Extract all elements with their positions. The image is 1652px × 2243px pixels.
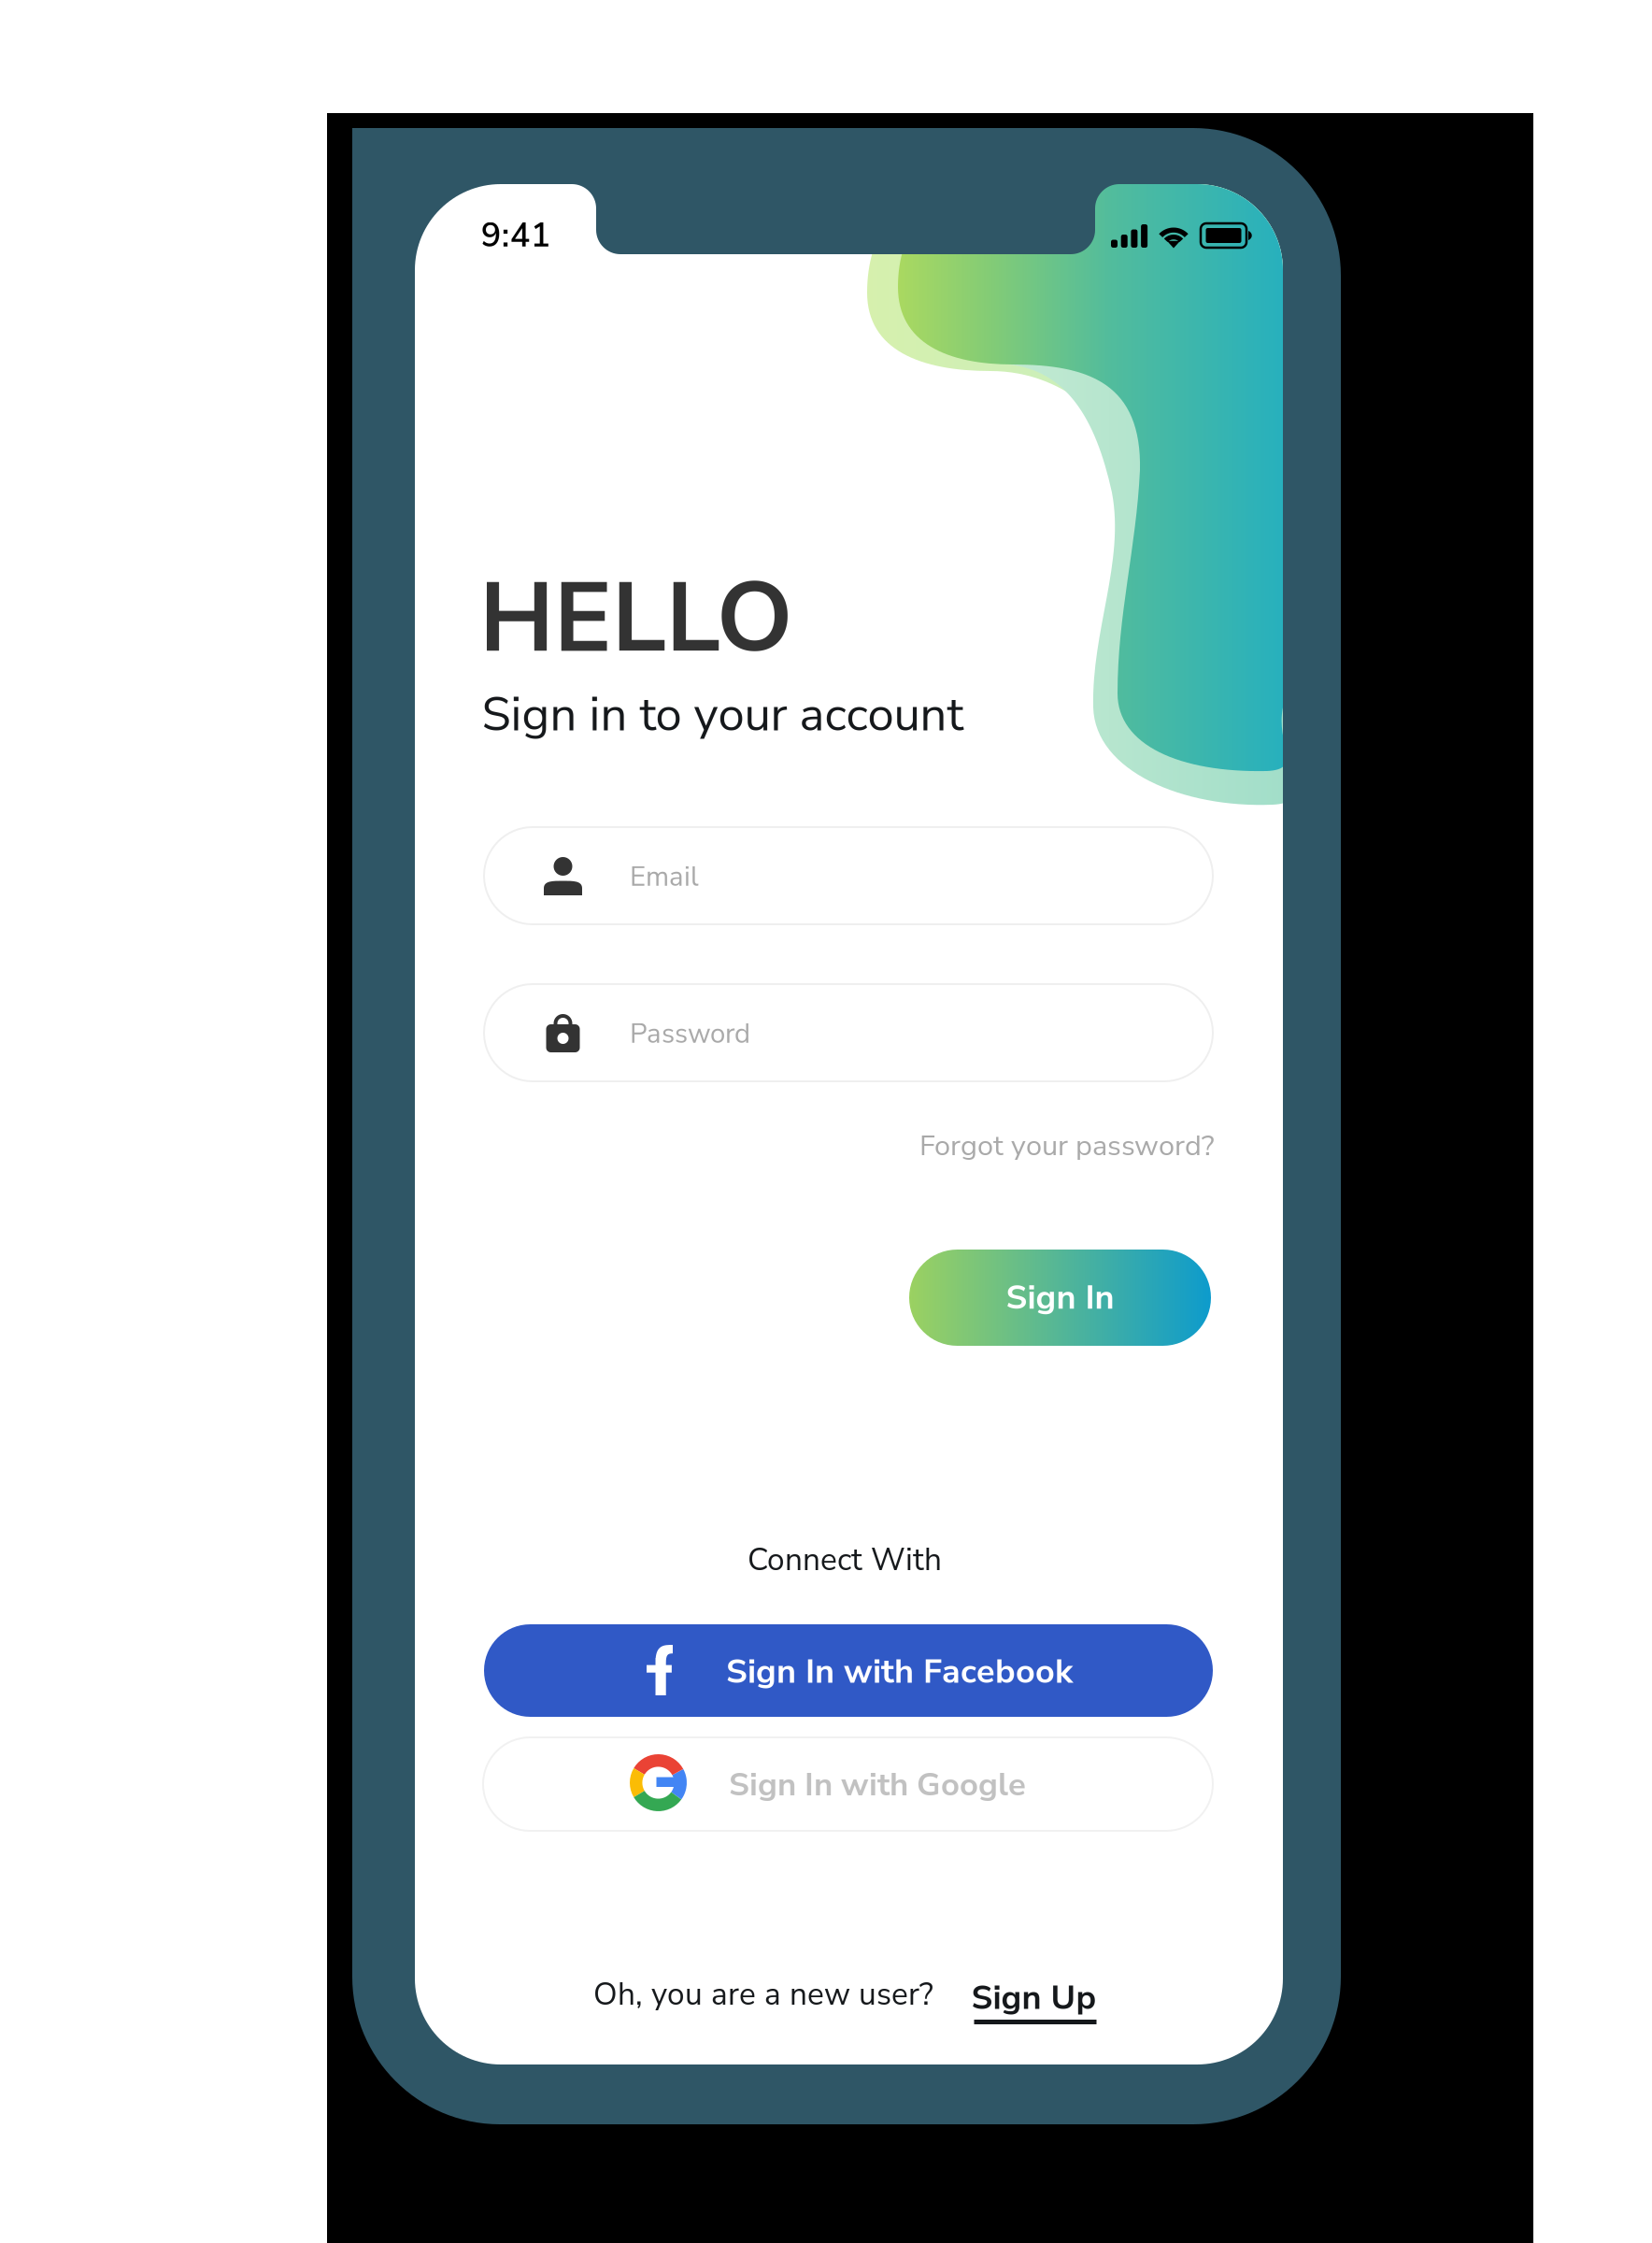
staticText: Email [630, 858, 699, 895]
staticText: HELLO [479, 552, 793, 685]
staticText: Sign Up [971, 1975, 1097, 2021]
staticText: Sign In [1006, 1275, 1114, 1321]
button[interactable]: Sign In with Facebook [484, 1624, 1213, 1717]
staticText: Oh, you are a new user? [593, 1973, 933, 2016]
button[interactable]: Forgot your password? [914, 1119, 1220, 1173]
staticText: Sign in to your account [482, 682, 964, 747]
button[interactable]: Sign Up [976, 1972, 1098, 2030]
button[interactable]: Sign In [909, 1250, 1211, 1346]
staticText: 9:41 [481, 213, 551, 259]
staticText: Sign In with Google [729, 1763, 1026, 1807]
staticText: Forgot your password? [919, 1126, 1215, 1165]
button[interactable]: Sign In with Google [483, 1737, 1213, 1831]
staticText: Connect With [748, 1539, 942, 1581]
staticText: Password [630, 1015, 750, 1052]
staticText: Sign In with Facebook [726, 1649, 1073, 1694]
